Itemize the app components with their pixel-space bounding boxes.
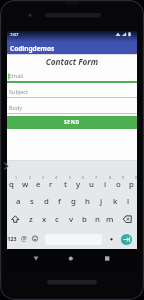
staticText: z — [29, 214, 33, 225]
button[interactable]: SEND — [7, 116, 137, 129]
staticText: r — [49, 179, 53, 190]
staticText: s — [30, 196, 34, 207]
button[interactable]: q — [5, 176, 17, 192]
button[interactable]: p — [125, 176, 137, 192]
staticText: t — [64, 179, 67, 190]
button[interactable]: c — [51, 211, 63, 227]
button[interactable]: h — [81, 193, 93, 209]
staticText: f — [58, 196, 61, 207]
staticText: n — [95, 214, 100, 225]
staticText: 8 — [109, 175, 112, 180]
button[interactable]: y — [72, 176, 84, 192]
button[interactable]: l — [122, 193, 134, 209]
button[interactable]: f — [53, 193, 65, 209]
button[interactable] — [7, 31, 137, 54]
button[interactable]: a — [12, 193, 24, 209]
staticText: Email — [9, 72, 24, 79]
staticText: 5 — [69, 175, 72, 180]
button[interactable] — [9, 212, 22, 226]
staticText: o — [116, 179, 121, 190]
staticText: i — [104, 179, 107, 190]
staticText: l — [127, 196, 130, 207]
button[interactable]: r — [45, 176, 57, 192]
staticText: 4 — [55, 175, 58, 180]
button[interactable]: d — [40, 193, 52, 209]
button[interactable] — [7, 86, 137, 99]
staticText: Subject — [9, 88, 28, 95]
button[interactable]: o — [112, 176, 124, 192]
staticText: k — [113, 196, 118, 207]
staticText: 1 — [15, 175, 18, 180]
button[interactable]: ?123 — [5, 235, 17, 242]
staticText: d — [44, 196, 49, 207]
button[interactable]: i — [99, 176, 111, 192]
button[interactable] — [62, 250, 80, 268]
button[interactable] — [108, 235, 115, 244]
staticText: Body — [9, 104, 23, 111]
staticText: q — [9, 179, 14, 190]
button[interactable]: u — [85, 176, 97, 192]
button[interactable] — [120, 233, 133, 246]
button[interactable] — [30, 233, 41, 244]
button[interactable]: w — [19, 176, 31, 192]
button[interactable] — [121, 212, 134, 226]
button[interactable]: k — [109, 193, 121, 209]
button[interactable]: e — [32, 176, 44, 192]
button[interactable]: @ — [21, 234, 27, 243]
button[interactable]: n — [91, 211, 103, 227]
staticText: p — [129, 179, 134, 190]
button[interactable]: j — [95, 193, 107, 209]
staticText: x — [42, 214, 47, 225]
staticText: h — [85, 196, 90, 207]
staticText: Codingdemos — [10, 44, 55, 53]
staticText: g — [71, 196, 76, 207]
staticText: 7:07 — [10, 32, 19, 38]
staticText: a — [16, 196, 21, 207]
button[interactable] — [98, 250, 116, 268]
staticText: m — [106, 214, 114, 225]
staticText: c — [55, 214, 59, 225]
staticText: 6 — [82, 175, 85, 180]
button[interactable] — [2, 161, 11, 172]
staticText: b — [82, 214, 87, 225]
staticText: w — [22, 179, 29, 190]
button[interactable]: g — [67, 193, 79, 209]
staticText: 3 — [42, 175, 45, 180]
staticText: v — [69, 214, 74, 225]
button[interactable] — [27, 250, 45, 268]
staticText: 2 — [29, 175, 32, 180]
button[interactable]: v — [65, 211, 77, 227]
staticText: j — [100, 196, 103, 207]
staticText: SEND — [64, 119, 80, 126]
staticText: e — [36, 179, 41, 190]
staticText: y — [76, 179, 81, 190]
staticText: 7 — [95, 175, 98, 180]
staticText: 9 — [122, 175, 125, 180]
button[interactable]: t — [59, 176, 71, 192]
staticText: Contact Form — [0, 56, 144, 67]
button[interactable]: b — [78, 211, 90, 227]
button[interactable] — [7, 102, 137, 115]
button[interactable]: x — [38, 211, 50, 227]
button[interactable]: s — [26, 193, 38, 209]
staticText: 0 — [135, 175, 138, 180]
staticText: u — [89, 179, 94, 190]
button[interactable] — [7, 70, 137, 83]
button[interactable]: m — [104, 211, 116, 227]
button[interactable]: z — [25, 211, 37, 227]
